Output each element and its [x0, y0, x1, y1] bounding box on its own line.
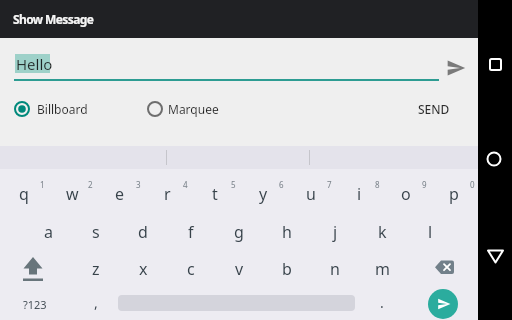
button[interactable]: h: [247, 216, 327, 248]
button[interactable]: w: [32, 178, 112, 210]
staticText: e: [115, 183, 125, 205]
staticText: n: [330, 258, 340, 280]
button[interactable]: z: [56, 253, 136, 285]
button[interactable]: i: [319, 178, 399, 210]
staticText: 6: [279, 179, 284, 190]
staticText: z: [92, 258, 100, 280]
staticText: x: [139, 258, 148, 280]
button[interactable]: n: [295, 253, 375, 285]
staticText: ?123: [23, 297, 47, 312]
staticText: 7: [327, 179, 332, 190]
staticText: 9: [422, 179, 427, 190]
staticText: 2: [88, 179, 93, 190]
staticText: 5: [231, 179, 236, 190]
button[interactable]: a: [8, 216, 88, 248]
staticText: p: [449, 183, 459, 205]
button[interactable]: g: [199, 216, 279, 248]
button[interactable]: SEND: [404, 95, 464, 123]
button[interactable]: ,: [56, 286, 136, 318]
staticText: 1: [40, 179, 45, 190]
button[interactable]: [11, 252, 55, 286]
button[interactable]: r: [127, 178, 207, 210]
staticText: o: [401, 183, 411, 205]
staticText: Show Message: [13, 11, 94, 27]
staticText: s: [92, 221, 100, 243]
button[interactable]: [478, 232, 512, 280]
button[interactable]: t: [175, 178, 255, 210]
staticText: q: [19, 183, 29, 205]
staticText: 3: [136, 179, 141, 190]
button[interactable]: [442, 55, 470, 81]
staticText: u: [306, 183, 316, 205]
button[interactable]: ?123: [0, 288, 75, 320]
staticText: t: [212, 183, 218, 205]
button[interactable]: [478, 135, 512, 183]
button[interactable]: [428, 289, 458, 319]
button[interactable]: x: [103, 253, 183, 285]
button[interactable]: .: [342, 286, 422, 318]
staticText: i: [357, 183, 362, 205]
staticText: v: [235, 258, 244, 280]
staticText: ,: [94, 293, 98, 312]
staticText: h: [282, 221, 292, 243]
button[interactable]: s: [56, 216, 136, 248]
button[interactable]: [424, 253, 464, 283]
staticText: m: [375, 258, 390, 280]
button[interactable]: p: [414, 178, 494, 210]
staticText: y: [259, 183, 268, 205]
button[interactable]: k: [342, 216, 422, 248]
staticText: Billboard: [37, 101, 88, 117]
staticText: d: [138, 221, 148, 243]
button[interactable]: [478, 40, 512, 88]
button[interactable]: Billboard: [8, 95, 98, 123]
button[interactable]: d: [103, 216, 183, 248]
staticText: .: [380, 293, 384, 312]
staticText: Marquee: [168, 101, 219, 117]
staticText: k: [378, 221, 387, 243]
button[interactable]: f: [151, 216, 231, 248]
staticText: w: [66, 183, 79, 205]
button[interactable]: u: [271, 178, 351, 210]
button[interactable]: e: [80, 178, 160, 210]
staticText: Hello: [16, 54, 53, 73]
staticText: a: [44, 221, 53, 243]
staticText: SEND: [418, 101, 450, 117]
staticText: r: [164, 183, 171, 205]
button[interactable]: y: [223, 178, 303, 210]
button[interactable]: Marquee: [141, 95, 231, 123]
button[interactable]: o: [366, 178, 446, 210]
staticText: 8: [375, 179, 380, 190]
staticText: 0: [470, 179, 475, 190]
button[interactable]: v: [199, 253, 279, 285]
staticText: l: [428, 221, 433, 243]
button[interactable]: c: [151, 253, 231, 285]
button[interactable]: Hello: [14, 50, 439, 80]
button[interactable]: l: [390, 216, 470, 248]
button[interactable]: j: [295, 216, 375, 248]
button[interactable]: m: [342, 253, 422, 285]
staticText: 4: [183, 179, 188, 190]
button[interactable]: q: [0, 178, 64, 210]
staticText: b: [282, 258, 292, 280]
button[interactable]: b: [247, 253, 327, 285]
staticText: f: [188, 221, 194, 243]
staticText: j: [333, 221, 338, 243]
staticText: c: [187, 258, 195, 280]
staticText: g: [234, 221, 244, 243]
